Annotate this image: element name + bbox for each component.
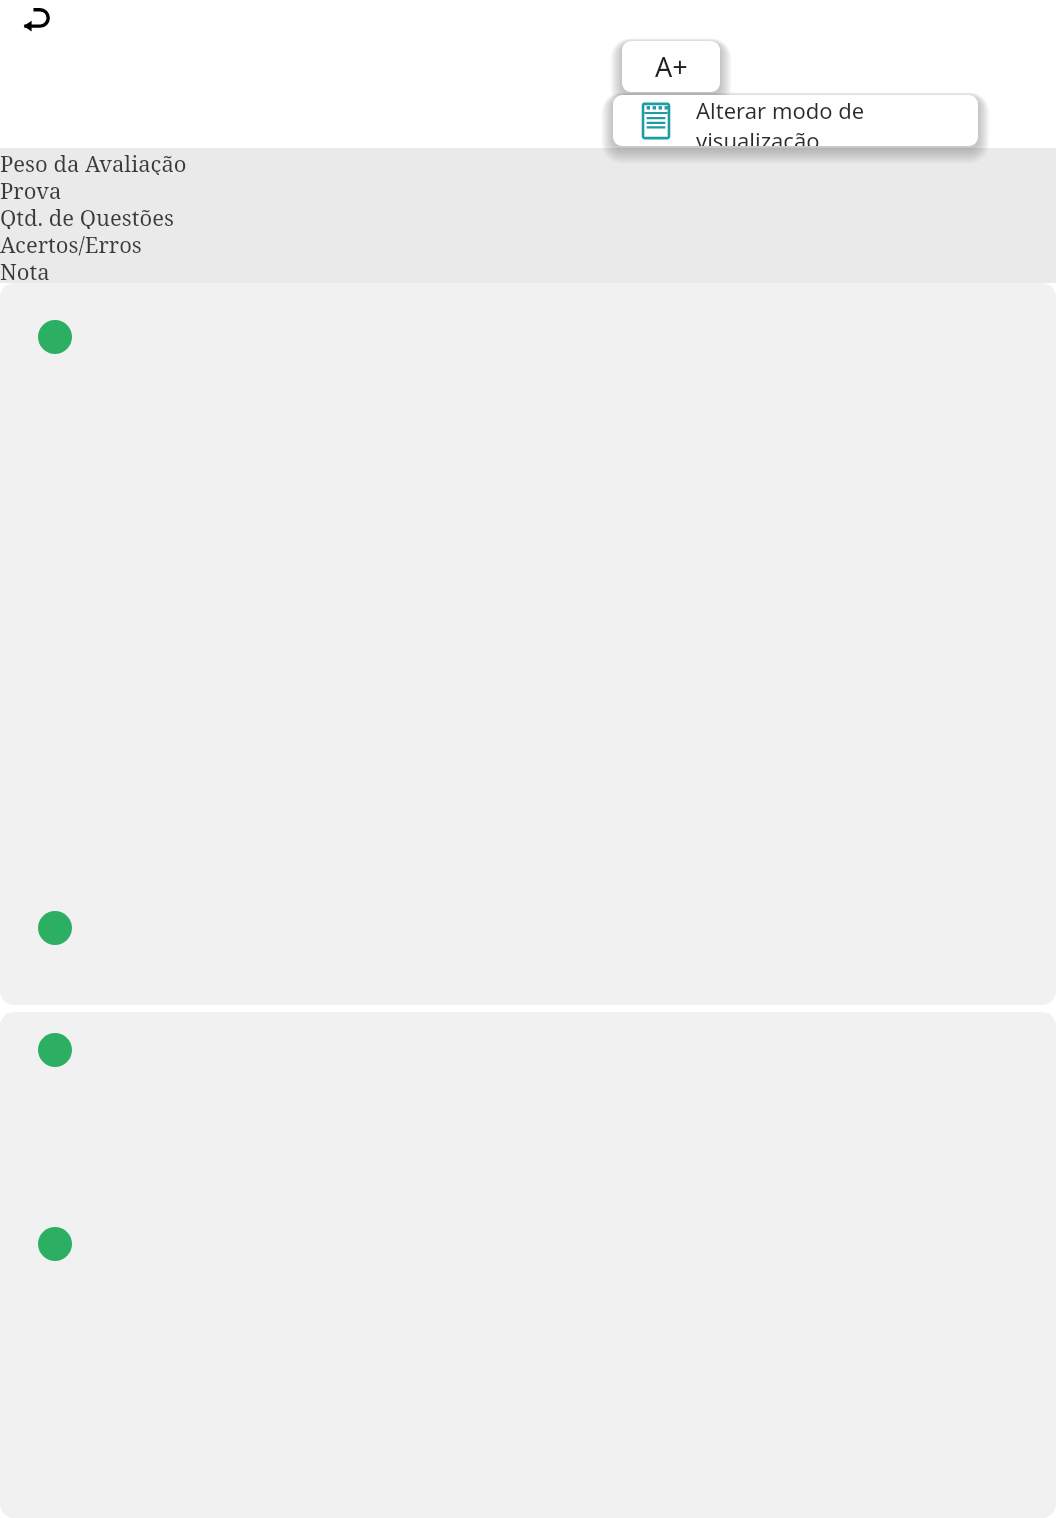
button[interactable] [0,1012,1056,1518]
staticText: A+ [655,48,688,85]
button[interactable]: Voltar [8,0,70,44]
staticText: Alterar modo de visualização [696,95,978,146]
staticText: Prova [0,175,62,202]
staticText: Qtd. de Questões [0,202,174,229]
staticText: Nota [0,256,50,283]
button[interactable]: Alterar modo de visualização [613,95,978,146]
button[interactable]: A+ [622,41,720,92]
staticText: Acertos/Erros [0,229,142,256]
button[interactable] [0,283,1056,1005]
staticText: Peso da Avaliação [0,148,187,175]
